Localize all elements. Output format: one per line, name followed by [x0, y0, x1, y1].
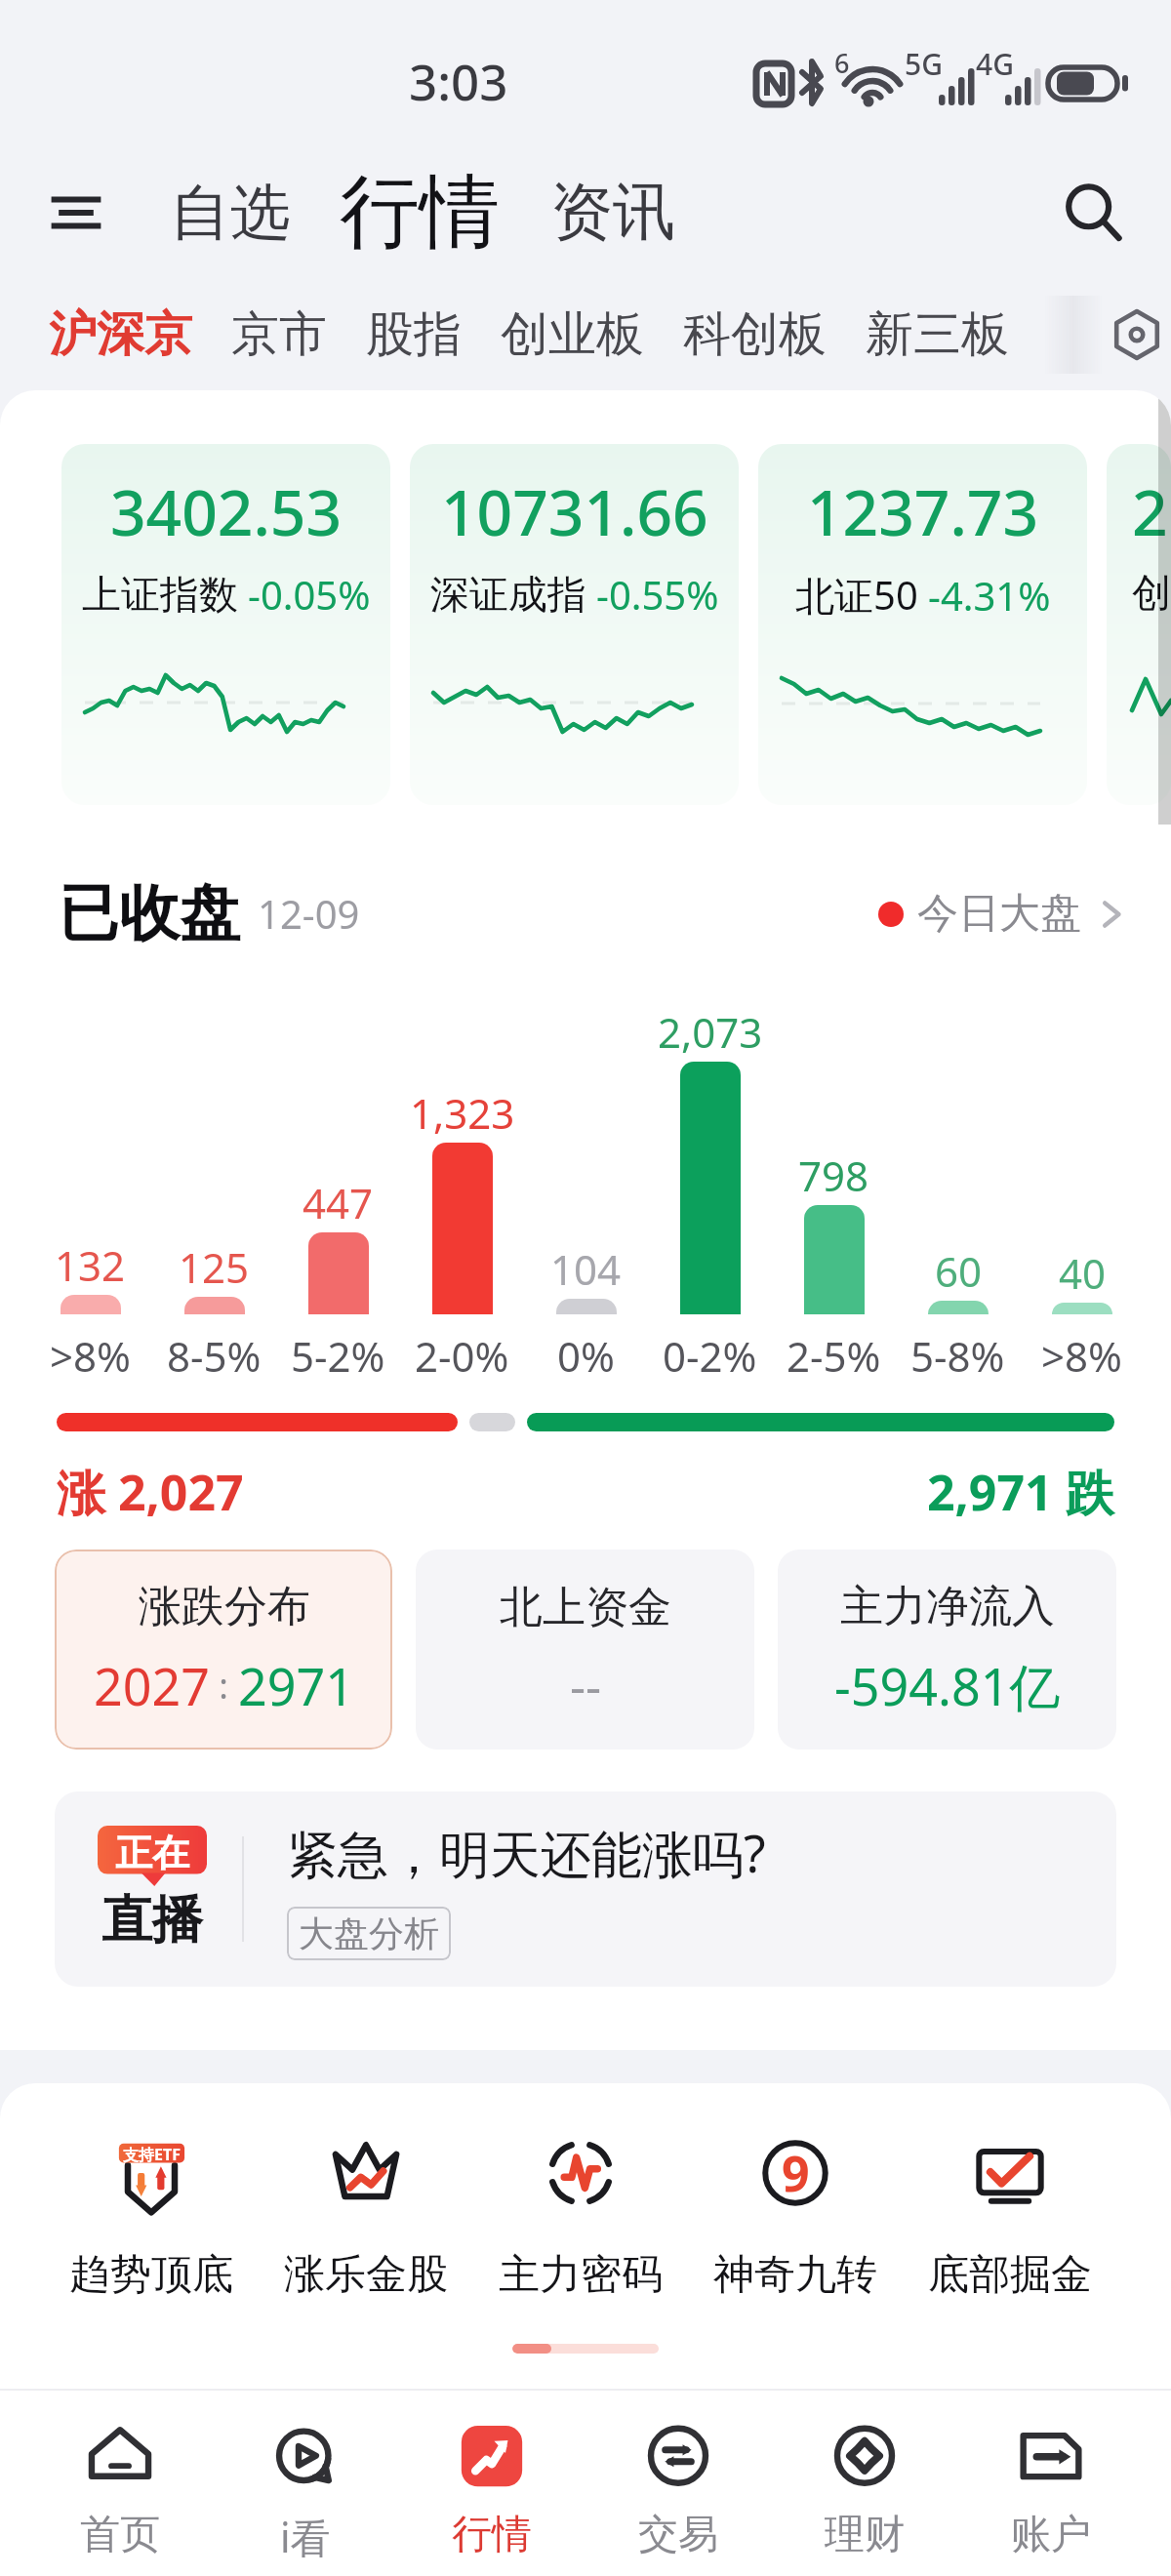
staticText: 理财	[825, 2510, 905, 2560]
staticText: --	[570, 1652, 602, 1718]
button[interactable]: 新三板	[862, 293, 1013, 377]
button[interactable]: 账户	[957, 2391, 1144, 2560]
staticText: 正在	[115, 1830, 189, 1876]
staticText: >8%	[1041, 1328, 1122, 1384]
staticText: 2-5%	[787, 1328, 881, 1384]
button[interactable]: 创业板	[497, 293, 648, 377]
staticText: 神奇九转	[713, 2249, 877, 2301]
staticText: 主力净流入	[840, 1580, 1055, 1633]
staticText: 账户	[1011, 2510, 1091, 2560]
staticText: 股指	[366, 304, 462, 365]
staticText: 60	[935, 1243, 983, 1299]
button[interactable]: 底部掘金	[903, 2120, 1117, 2307]
staticText: 上证指数	[82, 570, 238, 619]
button[interactable]: 资讯	[545, 159, 681, 265]
staticText: 125	[179, 1239, 250, 1295]
staticText: 行情	[340, 162, 500, 262]
button[interactable]: 北上资金	[416, 1550, 754, 1750]
staticText: -594.81亿	[834, 1651, 1061, 1720]
staticText: 大盘分析	[299, 1912, 439, 1955]
staticText: 4G	[976, 44, 1014, 84]
staticText: 已收盘	[59, 875, 240, 951]
staticText: 2	[1132, 469, 1168, 554]
button[interactable]: 3402.53	[61, 444, 390, 805]
button[interactable]: i看	[213, 2391, 398, 2564]
staticText: 交易	[638, 2510, 718, 2560]
button[interactable]: 行情	[398, 2391, 585, 2560]
staticText: 主力密码	[499, 2249, 663, 2301]
staticText: 2971	[238, 1651, 354, 1720]
button[interactable]: 自选	[164, 161, 297, 264]
button[interactable]: 股指	[362, 293, 465, 377]
staticText: 直播	[101, 1888, 203, 1952]
button[interactable]: 涨跌分布	[55, 1550, 392, 1750]
staticText: 深证成指	[430, 570, 586, 619]
button[interactable]: 主力净流入	[778, 1550, 1116, 1750]
staticText: 1,323	[410, 1085, 515, 1141]
staticText: 1237.73	[807, 469, 1039, 554]
staticText: 底部掘金	[928, 2249, 1092, 2301]
staticText: 北上资金	[500, 1581, 671, 1634]
staticText: -0.55%	[596, 568, 719, 621]
staticText: -4.31%	[928, 569, 1051, 622]
staticText: -0.05%	[248, 568, 371, 621]
staticText: 涨跌分布	[139, 1580, 310, 1633]
staticText: 2-0%	[415, 1328, 509, 1384]
staticText: 资讯	[550, 173, 675, 252]
button[interactable]: 1237.73	[758, 444, 1087, 805]
button[interactable]: 支持ETF	[43, 2120, 259, 2307]
staticText: 今日大盘	[917, 888, 1081, 940]
staticText: 沪深京	[49, 304, 192, 365]
staticText: 2027	[94, 1651, 210, 1720]
staticText: 行情	[452, 2510, 532, 2560]
staticText: 447	[303, 1175, 374, 1230]
button[interactable]: 科创板	[679, 293, 830, 377]
button[interactable]: 交易	[585, 2391, 771, 2560]
button[interactable]: 10731.66	[410, 444, 739, 805]
staticText: 涨 2,027	[57, 1459, 244, 1525]
button[interactable]: 正在	[55, 1791, 1116, 1987]
staticText: 自选	[170, 175, 291, 251]
staticText: 8-5%	[167, 1328, 262, 1384]
staticText: 创	[1132, 568, 1171, 617]
button[interactable]: 9	[688, 2120, 903, 2307]
staticText: 2,971 跌	[927, 1459, 1114, 1525]
staticText: 5-8%	[910, 1328, 1005, 1384]
staticText: 创业板	[501, 304, 644, 365]
staticText: 5G	[905, 44, 943, 84]
staticText: 104	[550, 1241, 622, 1297]
staticText: 新三板	[866, 304, 1009, 365]
button[interactable]: Settings	[1103, 278, 1171, 390]
staticText: 10731.66	[441, 469, 708, 554]
staticText: 9	[782, 2140, 810, 2206]
staticText: 3402.53	[110, 469, 343, 554]
staticText: i看	[280, 2510, 331, 2564]
staticText: 涨乐金股	[284, 2249, 448, 2301]
staticText: 40	[1059, 1245, 1107, 1301]
staticText: 京市	[231, 304, 327, 365]
staticText: 科创板	[683, 304, 827, 365]
staticText: 0%	[557, 1328, 615, 1384]
button[interactable]: 行情	[334, 156, 505, 268]
button[interactable]: 2	[1107, 444, 1171, 805]
staticText: 3:03	[409, 47, 508, 114]
staticText: 132	[55, 1237, 126, 1293]
staticText: 0-2%	[663, 1328, 757, 1384]
staticText: 趋势顶底	[69, 2249, 233, 2301]
button[interactable]: 首页	[27, 2391, 213, 2560]
button[interactable]: 沪深京	[45, 293, 196, 377]
staticText: :	[210, 1662, 238, 1710]
button[interactable]: 今日大盘	[878, 878, 1128, 949]
staticText: 首页	[80, 2510, 160, 2560]
button[interactable]: 理财	[771, 2391, 957, 2560]
button[interactable]: 涨乐金股	[259, 2120, 473, 2307]
button[interactable]: Search	[1048, 168, 1138, 258]
button[interactable]: 京市	[227, 293, 331, 377]
staticText: 5-2%	[291, 1328, 385, 1384]
staticText: 12-09	[258, 887, 360, 940]
staticText: 798	[798, 1147, 869, 1203]
staticText: 支持ETF	[123, 2144, 181, 2165]
button[interactable]: Menu	[39, 176, 113, 250]
staticText: 6	[834, 45, 850, 81]
button[interactable]: 主力密码	[473, 2120, 688, 2307]
